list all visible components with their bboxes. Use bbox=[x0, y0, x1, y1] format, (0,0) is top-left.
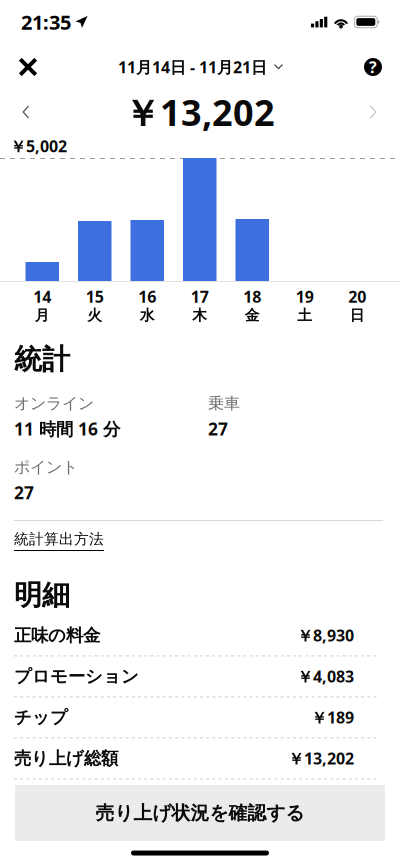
staticText: 16 bbox=[138, 286, 156, 307]
staticText: 27 bbox=[14, 481, 34, 504]
staticText: 統計算出方法 bbox=[14, 530, 104, 548]
staticText: 27 bbox=[208, 417, 228, 440]
staticText: 21:35 bbox=[21, 9, 71, 35]
staticText: 19 bbox=[296, 286, 314, 307]
staticText: 日 bbox=[350, 306, 365, 324]
staticText: ￥8,930 bbox=[297, 625, 354, 646]
staticText: ? bbox=[369, 56, 377, 78]
button[interactable]: 次の週 bbox=[337, 90, 377, 134]
staticText: チップ bbox=[14, 707, 68, 728]
staticText: 18 bbox=[243, 286, 261, 307]
button[interactable]: 前の週 bbox=[22, 90, 62, 134]
staticText: ポイント bbox=[14, 457, 78, 477]
staticText: プロモーション bbox=[14, 666, 139, 687]
staticText: 売り上げ状況を確認する bbox=[95, 801, 304, 824]
staticText: 火 bbox=[87, 306, 102, 324]
staticText: ￥189 bbox=[311, 707, 354, 728]
button[interactable]: 閉じる bbox=[19, 47, 63, 87]
staticText: 金 bbox=[245, 306, 260, 324]
staticText: 11月14日 - 11月21日 bbox=[118, 56, 267, 78]
button[interactable]: 売り上げ状況を確認する bbox=[15, 785, 385, 841]
button[interactable]: 統計算出方法 bbox=[14, 521, 383, 564]
button[interactable]: 11月14日 - 11月21日 bbox=[118, 47, 283, 87]
staticText: 土 bbox=[297, 306, 312, 324]
staticText: 17 bbox=[191, 286, 209, 307]
staticText: オンライン bbox=[14, 394, 94, 413]
staticText: ￥13,202 bbox=[288, 748, 354, 769]
staticText: 20 bbox=[348, 286, 366, 307]
staticText: ￥13,202 bbox=[124, 88, 275, 136]
staticText: ￥5,002 bbox=[10, 135, 67, 157]
button[interactable]: ヘルプ bbox=[338, 47, 382, 87]
staticText: 14 bbox=[33, 286, 51, 307]
staticText: 15 bbox=[86, 286, 104, 307]
staticText: 統計 bbox=[14, 342, 70, 377]
staticText: 月 bbox=[35, 306, 50, 324]
staticText: 11 時間 16 分 bbox=[14, 417, 120, 440]
staticText: 水 bbox=[140, 306, 155, 324]
staticText: 正味の料金 bbox=[14, 625, 100, 646]
staticText: 売り上げ総額 bbox=[14, 748, 118, 769]
staticText: 乗車 bbox=[208, 394, 240, 413]
staticText: 明細 bbox=[14, 578, 70, 612]
staticText: ￥4,083 bbox=[297, 666, 354, 687]
staticText: 木 bbox=[192, 306, 207, 324]
